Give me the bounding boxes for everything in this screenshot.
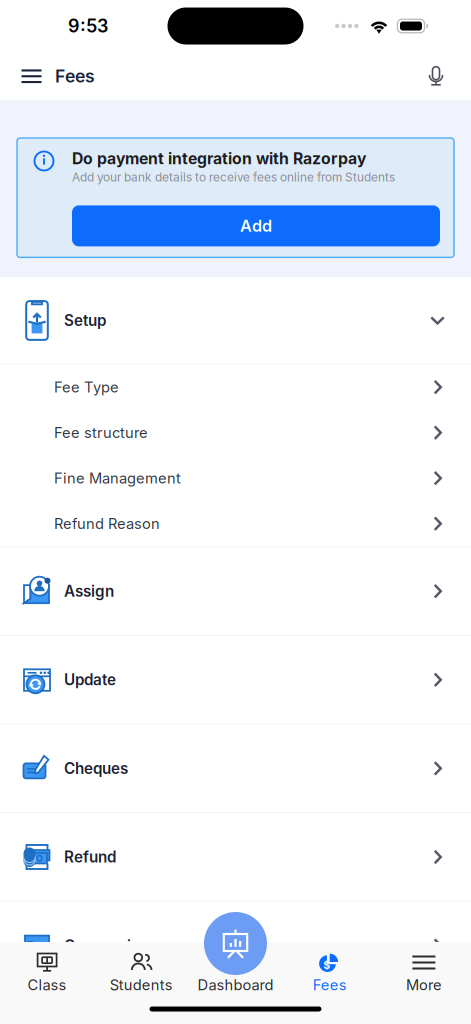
button[interactable]: Fine Management	[0, 455, 471, 501]
staticText: More	[406, 976, 442, 994]
staticText: Do payment integration with Razorpay	[72, 149, 366, 168]
staticText: Refund	[64, 848, 116, 866]
staticText: Fine Management	[54, 469, 181, 487]
staticText: Fee structure	[54, 424, 148, 441]
staticText: Cheques	[64, 759, 128, 778]
button[interactable]: Assign	[0, 547, 471, 635]
button[interactable]: Refund Reason	[0, 501, 471, 546]
staticText: Add	[240, 216, 272, 236]
staticText: Refund Reason	[54, 515, 160, 532]
button[interactable]: Fee Type	[0, 364, 471, 410]
button[interactable]: Setup	[0, 277, 471, 363]
staticText: $	[323, 958, 330, 971]
staticText: Concession	[64, 936, 149, 955]
staticText: Fees	[313, 976, 347, 994]
button[interactable]: Students	[94, 942, 188, 1006]
button[interactable]: Update	[0, 636, 471, 724]
staticText: 9:53	[68, 15, 108, 37]
button[interactable]: Voice search	[412, 54, 471, 98]
button[interactable]: Menu	[0, 56, 55, 96]
button[interactable]: Fee structure	[0, 410, 471, 455]
staticText: Fee Type	[54, 378, 119, 396]
button[interactable]: Dashboard	[204, 912, 267, 975]
staticText: Class	[28, 976, 67, 994]
staticText: Update	[64, 671, 116, 689]
staticText: Setup	[64, 311, 106, 330]
button[interactable]: Concession	[0, 902, 471, 989]
staticText: Assign	[64, 582, 114, 600]
staticText: Students	[110, 976, 173, 994]
button[interactable]: $	[283, 942, 377, 1006]
button[interactable]: Class	[0, 942, 94, 1006]
button[interactable]: Add	[72, 205, 440, 246]
staticText: Add your bank details to receive fees on…	[72, 170, 395, 184]
button[interactable]: Dashboard	[188, 942, 283, 1006]
button[interactable]: More	[377, 942, 471, 1006]
button[interactable]: Cheques	[0, 725, 471, 812]
button[interactable]: Refund	[0, 813, 471, 901]
staticText: Fees	[55, 65, 95, 87]
staticText: Dashboard	[197, 976, 273, 994]
